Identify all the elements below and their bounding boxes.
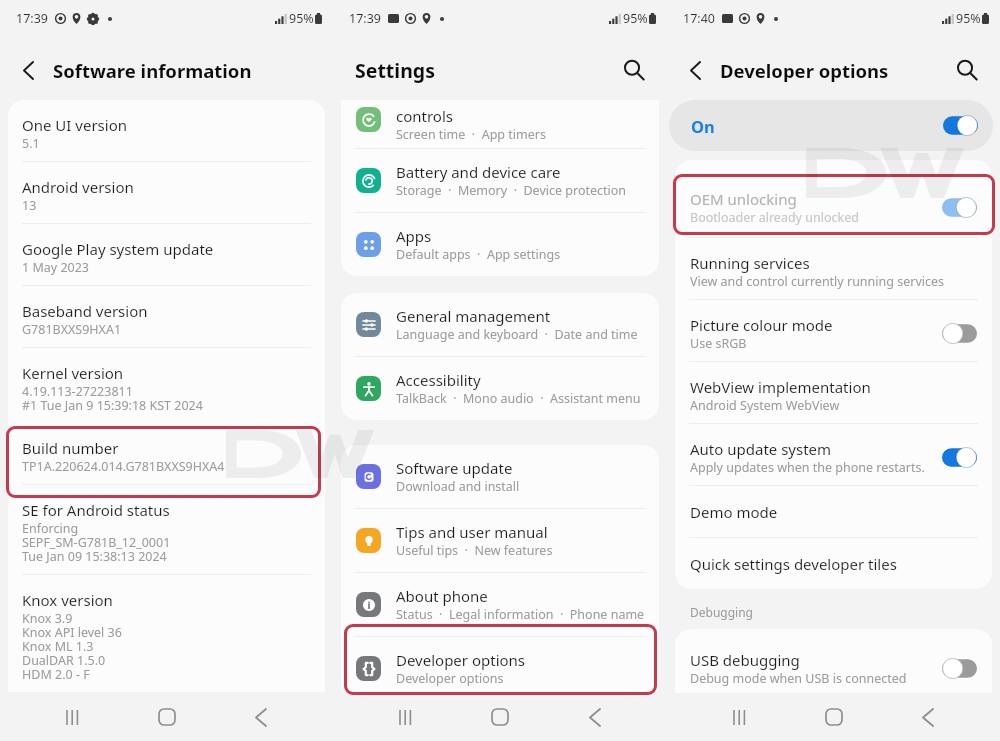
staticText: Developer options bbox=[396, 650, 526, 670]
staticText: Enforcing SEPF_SM-G781B_12_0001 Tue Jan … bbox=[22, 520, 171, 565]
staticText: Accessibility bbox=[396, 370, 481, 390]
staticText: Tips and user manual bbox=[396, 522, 548, 542]
button[interactable]: Home bbox=[477, 694, 523, 740]
staticText: TP1A.220624.014.G781BXXS9HXA4 bbox=[22, 458, 225, 475]
button[interactable]: Recents bbox=[716, 694, 762, 740]
staticText: Software information bbox=[53, 58, 252, 83]
staticText: 17:39 bbox=[16, 10, 48, 27]
staticText: Kernel version bbox=[22, 363, 124, 383]
staticText: G781BXXS9HXA1 bbox=[22, 321, 122, 338]
staticText: Demo mode bbox=[690, 502, 778, 522]
button[interactable]: Running services bbox=[675, 238, 992, 299]
staticText: Developer options bbox=[720, 58, 889, 83]
button[interactable]: Toggle bbox=[942, 323, 977, 344]
button[interactable]: Accessibility bbox=[341, 357, 659, 420]
button[interactable]: About phone bbox=[341, 573, 659, 636]
staticText: Software update bbox=[396, 458, 513, 478]
staticText: controls bbox=[396, 106, 453, 126]
button[interactable]: Back bbox=[905, 694, 951, 740]
staticText: Bootloader already unlocked bbox=[690, 209, 859, 226]
staticText: 95% bbox=[289, 10, 314, 27]
button[interactable]: Toggle bbox=[942, 197, 977, 218]
staticText: Use sRGB bbox=[690, 335, 747, 352]
button[interactable]: One UI version bbox=[8, 100, 325, 161]
button[interactable]: Back bbox=[24, 48, 53, 92]
staticText: 17:39 bbox=[349, 10, 381, 27]
staticText: Download and install bbox=[396, 478, 520, 495]
button[interactable]: controls bbox=[341, 100, 659, 148]
staticText: About phone bbox=[396, 586, 488, 606]
staticText: Battery and device care bbox=[396, 162, 561, 182]
staticText: 5.1 bbox=[22, 135, 40, 152]
staticText: Screen time · App timers bbox=[396, 126, 546, 143]
button[interactable]: Developer options bbox=[341, 637, 659, 700]
staticText: 17:40 bbox=[683, 10, 715, 27]
staticText: USB debugging bbox=[690, 650, 800, 670]
button[interactable]: Toggle bbox=[943, 115, 978, 136]
staticText: Knox 3.9 Knox API level 36 Knox ML 1.3 D… bbox=[22, 610, 122, 683]
staticText: 1 May 2023 bbox=[22, 259, 89, 276]
button[interactable]: Demo mode bbox=[675, 486, 992, 537]
staticText: Debugging bbox=[690, 604, 753, 620]
staticText: On bbox=[691, 115, 715, 137]
button[interactable]: Search bbox=[950, 53, 984, 87]
staticText: Android System WebView bbox=[690, 397, 840, 414]
button[interactable]: Tips and user manual bbox=[341, 509, 659, 572]
button[interactable]: Apps bbox=[341, 213, 659, 276]
button[interactable]: Kernel version bbox=[8, 348, 325, 423]
button[interactable]: Google Play system update bbox=[8, 224, 325, 285]
button[interactable]: Back bbox=[572, 694, 618, 740]
staticText: Google Play system update bbox=[22, 239, 214, 259]
button[interactable]: Home bbox=[811, 694, 857, 740]
button[interactable]: Auto update system bbox=[675, 424, 992, 485]
staticText: Language and keyboard · Date and time bbox=[396, 326, 638, 343]
staticText: Debug mode when USB is connected bbox=[690, 670, 907, 687]
staticText: General management bbox=[396, 306, 551, 326]
button[interactable]: General management bbox=[341, 293, 659, 356]
button[interactable]: Quick settings developer tiles bbox=[675, 538, 992, 589]
staticText: SE for Android status bbox=[22, 500, 170, 520]
staticText: Android version bbox=[22, 177, 134, 197]
button[interactable]: USB debugging bbox=[675, 629, 992, 707]
staticText: Quick settings developer tiles bbox=[690, 554, 897, 574]
button[interactable]: Recents bbox=[49, 694, 95, 740]
staticText: 13 bbox=[22, 197, 37, 214]
staticText: TalkBack · Mono audio · Assistant menu bbox=[396, 390, 641, 407]
button[interactable]: On bbox=[669, 100, 993, 151]
staticText: Default apps · App settings bbox=[396, 246, 561, 263]
button[interactable]: SE for Android status bbox=[8, 485, 325, 574]
staticText: Developer options bbox=[396, 670, 504, 687]
staticText: Build number bbox=[22, 438, 119, 458]
button[interactable]: WebView implementation bbox=[675, 362, 992, 423]
staticText: Running services bbox=[690, 253, 810, 273]
button[interactable]: Battery and device care bbox=[341, 149, 659, 212]
staticText: 95% bbox=[956, 10, 981, 27]
button[interactable]: Search bbox=[617, 53, 651, 87]
staticText: OEM unlocking bbox=[690, 189, 797, 209]
staticText: Useful tips · New features bbox=[396, 542, 553, 559]
staticText: Storage · Memory · Device protection bbox=[396, 182, 627, 199]
staticText: Picture colour mode bbox=[690, 315, 833, 335]
staticText: Auto update system bbox=[690, 439, 832, 459]
staticText: 4.19.113-27223811 #1 Tue Jan 9 15:39:18 … bbox=[22, 383, 203, 414]
staticText: Settings bbox=[355, 57, 435, 84]
button[interactable]: Build number bbox=[8, 423, 325, 484]
button[interactable]: Picture colour mode bbox=[675, 300, 992, 361]
button[interactable]: Baseband version bbox=[8, 286, 325, 347]
staticText: Apply updates when the phone restarts. bbox=[690, 459, 925, 476]
staticText: View and control currently running servi… bbox=[690, 273, 945, 290]
button[interactable]: Knox version bbox=[8, 575, 325, 692]
staticText: 95% bbox=[623, 10, 648, 27]
button[interactable]: Toggle bbox=[942, 658, 977, 679]
button[interactable]: Back bbox=[238, 694, 284, 740]
staticText: Baseband version bbox=[22, 301, 148, 321]
button[interactable]: Android version bbox=[8, 162, 325, 223]
button[interactable]: Home bbox=[144, 694, 190, 740]
button[interactable]: Software update bbox=[341, 445, 659, 508]
button[interactable]: Toggle bbox=[942, 447, 977, 468]
staticText: WebView implementation bbox=[690, 377, 871, 397]
button[interactable]: OEM unlocking bbox=[675, 160, 992, 237]
staticText: One UI version bbox=[22, 115, 127, 135]
button[interactable]: Recents bbox=[382, 694, 428, 740]
button[interactable]: Back bbox=[691, 48, 720, 92]
